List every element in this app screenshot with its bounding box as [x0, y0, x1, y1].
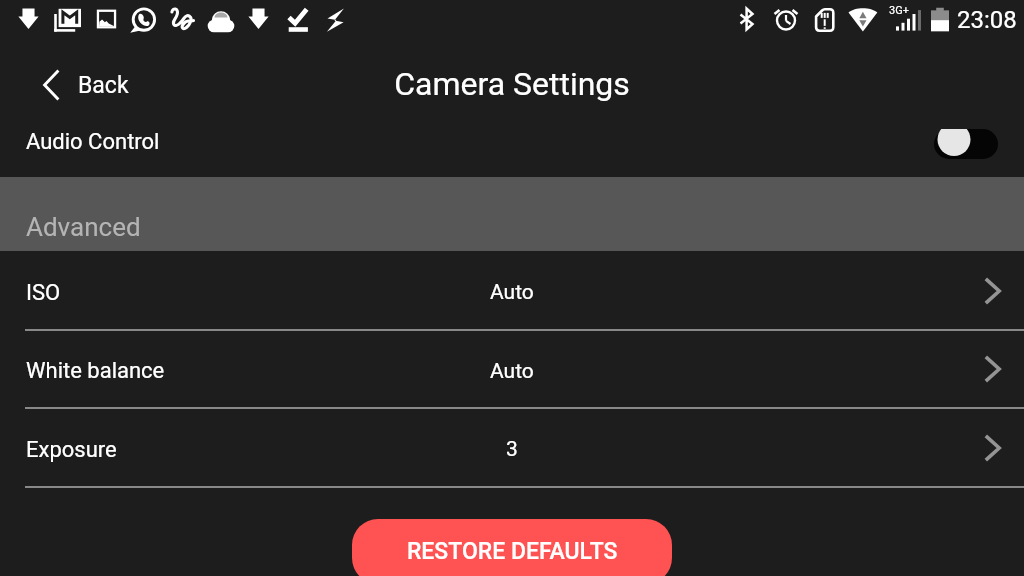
- button[interactable]: White balance: [0, 330, 1024, 408]
- staticText: 3: [506, 437, 518, 462]
- staticText: Camera Settings: [0, 65, 1024, 103]
- staticText: 3G+: [889, 4, 909, 17]
- staticText: ISO: [26, 280, 61, 306]
- staticText: 23:08: [957, 6, 1017, 34]
- staticText: Auto: [490, 280, 534, 305]
- button[interactable]: ISO: [0, 251, 1024, 330]
- staticText: White balance: [26, 358, 165, 384]
- staticText: Advanced: [26, 212, 141, 242]
- button[interactable]: Audio Control toggle, off: [934, 129, 998, 159]
- staticText: RESTORE DEFAULTS: [407, 538, 618, 565]
- staticText: Exposure: [26, 437, 117, 463]
- button[interactable]: Exposure: [0, 408, 1024, 487]
- other: Back: [43, 69, 60, 101]
- staticText: Audio Control: [26, 129, 160, 155]
- button[interactable]: Audio Control: [0, 101, 1024, 177]
- staticText: Auto: [490, 359, 534, 384]
- button[interactable]: RESTORE DEFAULTS: [352, 519, 672, 576]
- button[interactable]: Back: [31, 58, 141, 112]
- staticText: Back: [78, 72, 129, 99]
